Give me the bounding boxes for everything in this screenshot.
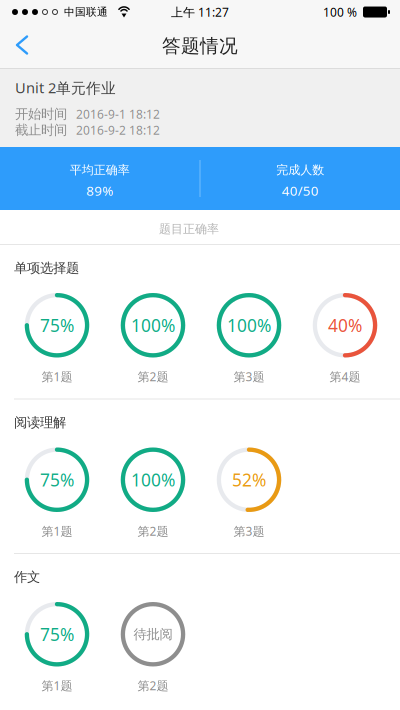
staticText: 第1题 [41,368,72,384]
staticText: 2016-9-2 18:12 [76,122,160,138]
staticText: 平均正确率 [70,163,130,177]
staticText: 第3题 [233,368,264,384]
staticText: 75% [40,468,74,491]
staticText: 待批阅 [133,626,172,642]
staticText: 第3题 [233,523,264,539]
staticText: 答题情况 [162,34,238,57]
staticText: 第1题 [41,677,72,693]
staticText: 阅读理解 [14,414,66,431]
staticText: 单项选择题 [14,260,79,276]
staticText: 40/50 [282,182,319,199]
staticText: 中国联通 [64,5,108,18]
staticText: 100% [131,314,175,337]
staticText: 开始时间 [15,106,67,122]
staticText: 75% [40,623,74,646]
staticText: 完成人数 [276,163,324,177]
staticText: 第1题 [41,523,72,539]
staticText: 第2题 [137,523,168,539]
staticText: 第2题 [137,677,168,693]
staticText: 第2题 [137,368,168,384]
staticText: 作文 [14,569,40,585]
staticText: 上午 11:27 [171,4,229,20]
staticText: 52% [232,468,266,491]
staticText: 75% [40,314,74,337]
staticText: 40% [328,314,362,337]
staticText: 100% [131,468,175,491]
staticText: 100% [227,314,271,337]
staticText: 第4题 [329,368,360,384]
staticText: 2016-9-1 18:12 [76,106,160,122]
staticText: 题目正确率 [159,222,219,236]
staticText: 截止时间 [15,122,67,138]
staticText: Unit 2单元作业 [15,78,116,97]
staticText: 89% [86,182,113,199]
staticText: 100 % [323,4,357,20]
button[interactable]: Back [0,25,47,66]
